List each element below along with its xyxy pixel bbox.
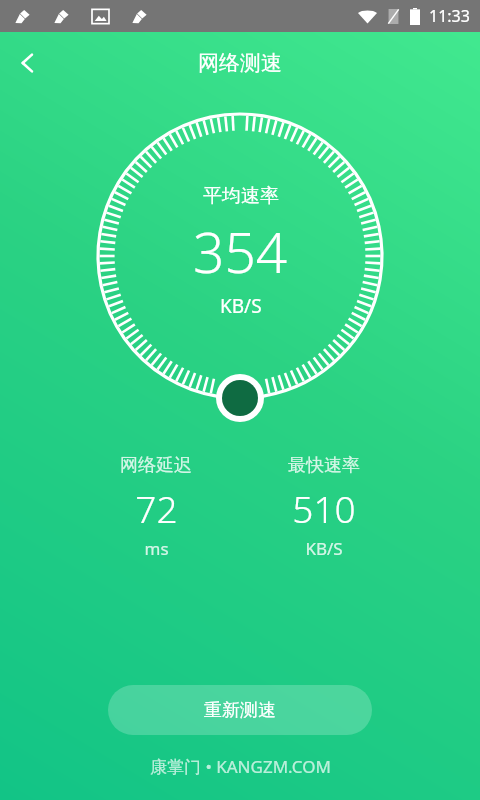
staticText: KB/S xyxy=(305,537,343,560)
staticText: 72 xyxy=(135,483,178,533)
staticText: KB/S xyxy=(220,293,262,319)
button[interactable]: Back xyxy=(0,35,56,91)
staticText: ms xyxy=(144,537,169,560)
staticText: 平均速率 xyxy=(203,184,279,208)
staticText: 网络延迟 xyxy=(120,454,192,477)
staticText: 354 xyxy=(193,214,288,289)
staticText: 11:33 xyxy=(429,5,470,27)
button[interactable]: 重新测速 xyxy=(108,685,372,735)
staticText: 最快速率 xyxy=(288,454,360,477)
staticText: 网络测速 xyxy=(198,50,282,76)
staticText: 重新测速 xyxy=(204,699,276,722)
staticText: 康掌门 • KANGZM.COM xyxy=(150,755,331,778)
staticText: 510 xyxy=(292,483,356,533)
